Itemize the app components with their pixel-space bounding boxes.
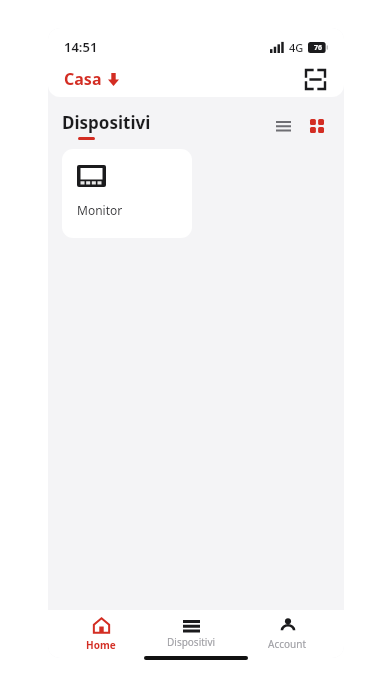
button[interactable]: Account <box>254 614 321 654</box>
staticText: Monitor <box>77 202 123 218</box>
button[interactable]: Monitor <box>62 149 192 238</box>
button[interactable]: List view <box>270 113 296 139</box>
staticText: Home <box>86 638 116 652</box>
staticText: 14:51 <box>64 38 98 56</box>
staticText: Account <box>268 637 307 651</box>
button[interactable]: Grid view <box>304 113 330 139</box>
button[interactable]: Home <box>72 614 130 655</box>
staticText: 76 <box>314 43 323 53</box>
button[interactable]: Casa <box>62 66 121 92</box>
staticText: Dispositivi <box>167 635 216 649</box>
staticText: 4G <box>289 40 304 55</box>
button[interactable]: Scan code <box>300 64 330 94</box>
button[interactable]: Dispositivi <box>153 617 230 652</box>
staticText: Casa <box>64 68 102 90</box>
staticText: Dispositivi <box>62 111 151 134</box>
